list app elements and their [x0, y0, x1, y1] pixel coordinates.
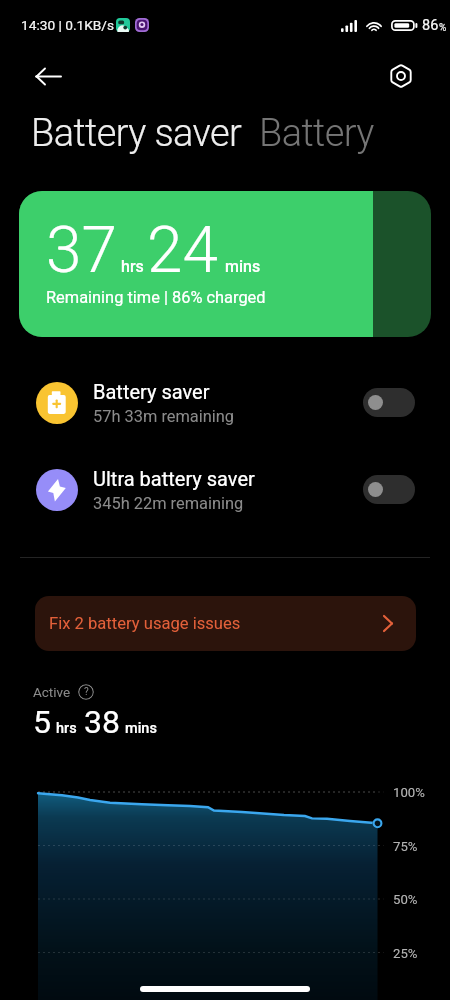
staticText: ? — [84, 686, 89, 698]
button[interactable]: Back — [26, 54, 70, 98]
staticText: % — [439, 22, 447, 34]
staticText: 57h 33m remaining — [93, 407, 235, 426]
staticText: 75% — [393, 839, 418, 854]
button[interactable]: Help — [78, 684, 94, 700]
staticText: hrs — [56, 720, 77, 737]
button[interactable]: 37 — [19, 191, 431, 337]
staticText: mins — [125, 720, 157, 737]
staticText: 5 — [33, 703, 51, 741]
staticText: Battery saver — [93, 380, 210, 403]
staticText: mins — [225, 257, 261, 276]
button[interactable]: Toggle Battery saver — [363, 388, 415, 417]
staticText: 24 — [147, 213, 218, 288]
staticText: Active — [33, 684, 71, 700]
staticText: 38 — [84, 703, 120, 741]
staticText: 100% — [393, 785, 425, 800]
staticText: 37 — [46, 213, 117, 288]
staticText: 50% — [393, 892, 418, 907]
staticText: Remaining time | 86% charged — [46, 288, 266, 307]
staticText: 25% — [393, 946, 418, 961]
staticText: 14:30 | 0.1KB/s — [21, 17, 115, 33]
staticText: Fix 2 battery usage issues — [49, 614, 241, 633]
button[interactable]: Toggle Ultra battery saver — [363, 475, 415, 504]
staticText: 345h 22m remaining — [93, 494, 244, 513]
staticText: Battery saver — [31, 111, 242, 156]
button[interactable]: Ultra battery saver — [0, 446, 450, 533]
staticText: Battery — [259, 111, 374, 156]
staticText: 86 — [422, 17, 439, 34]
staticText: hrs — [121, 257, 144, 276]
button[interactable]: Settings — [381, 56, 421, 96]
button[interactable]: Fix 2 battery usage issues — [35, 596, 416, 651]
staticText: Ultra battery saver — [93, 467, 255, 490]
button[interactable]: Battery saver — [0, 359, 450, 446]
